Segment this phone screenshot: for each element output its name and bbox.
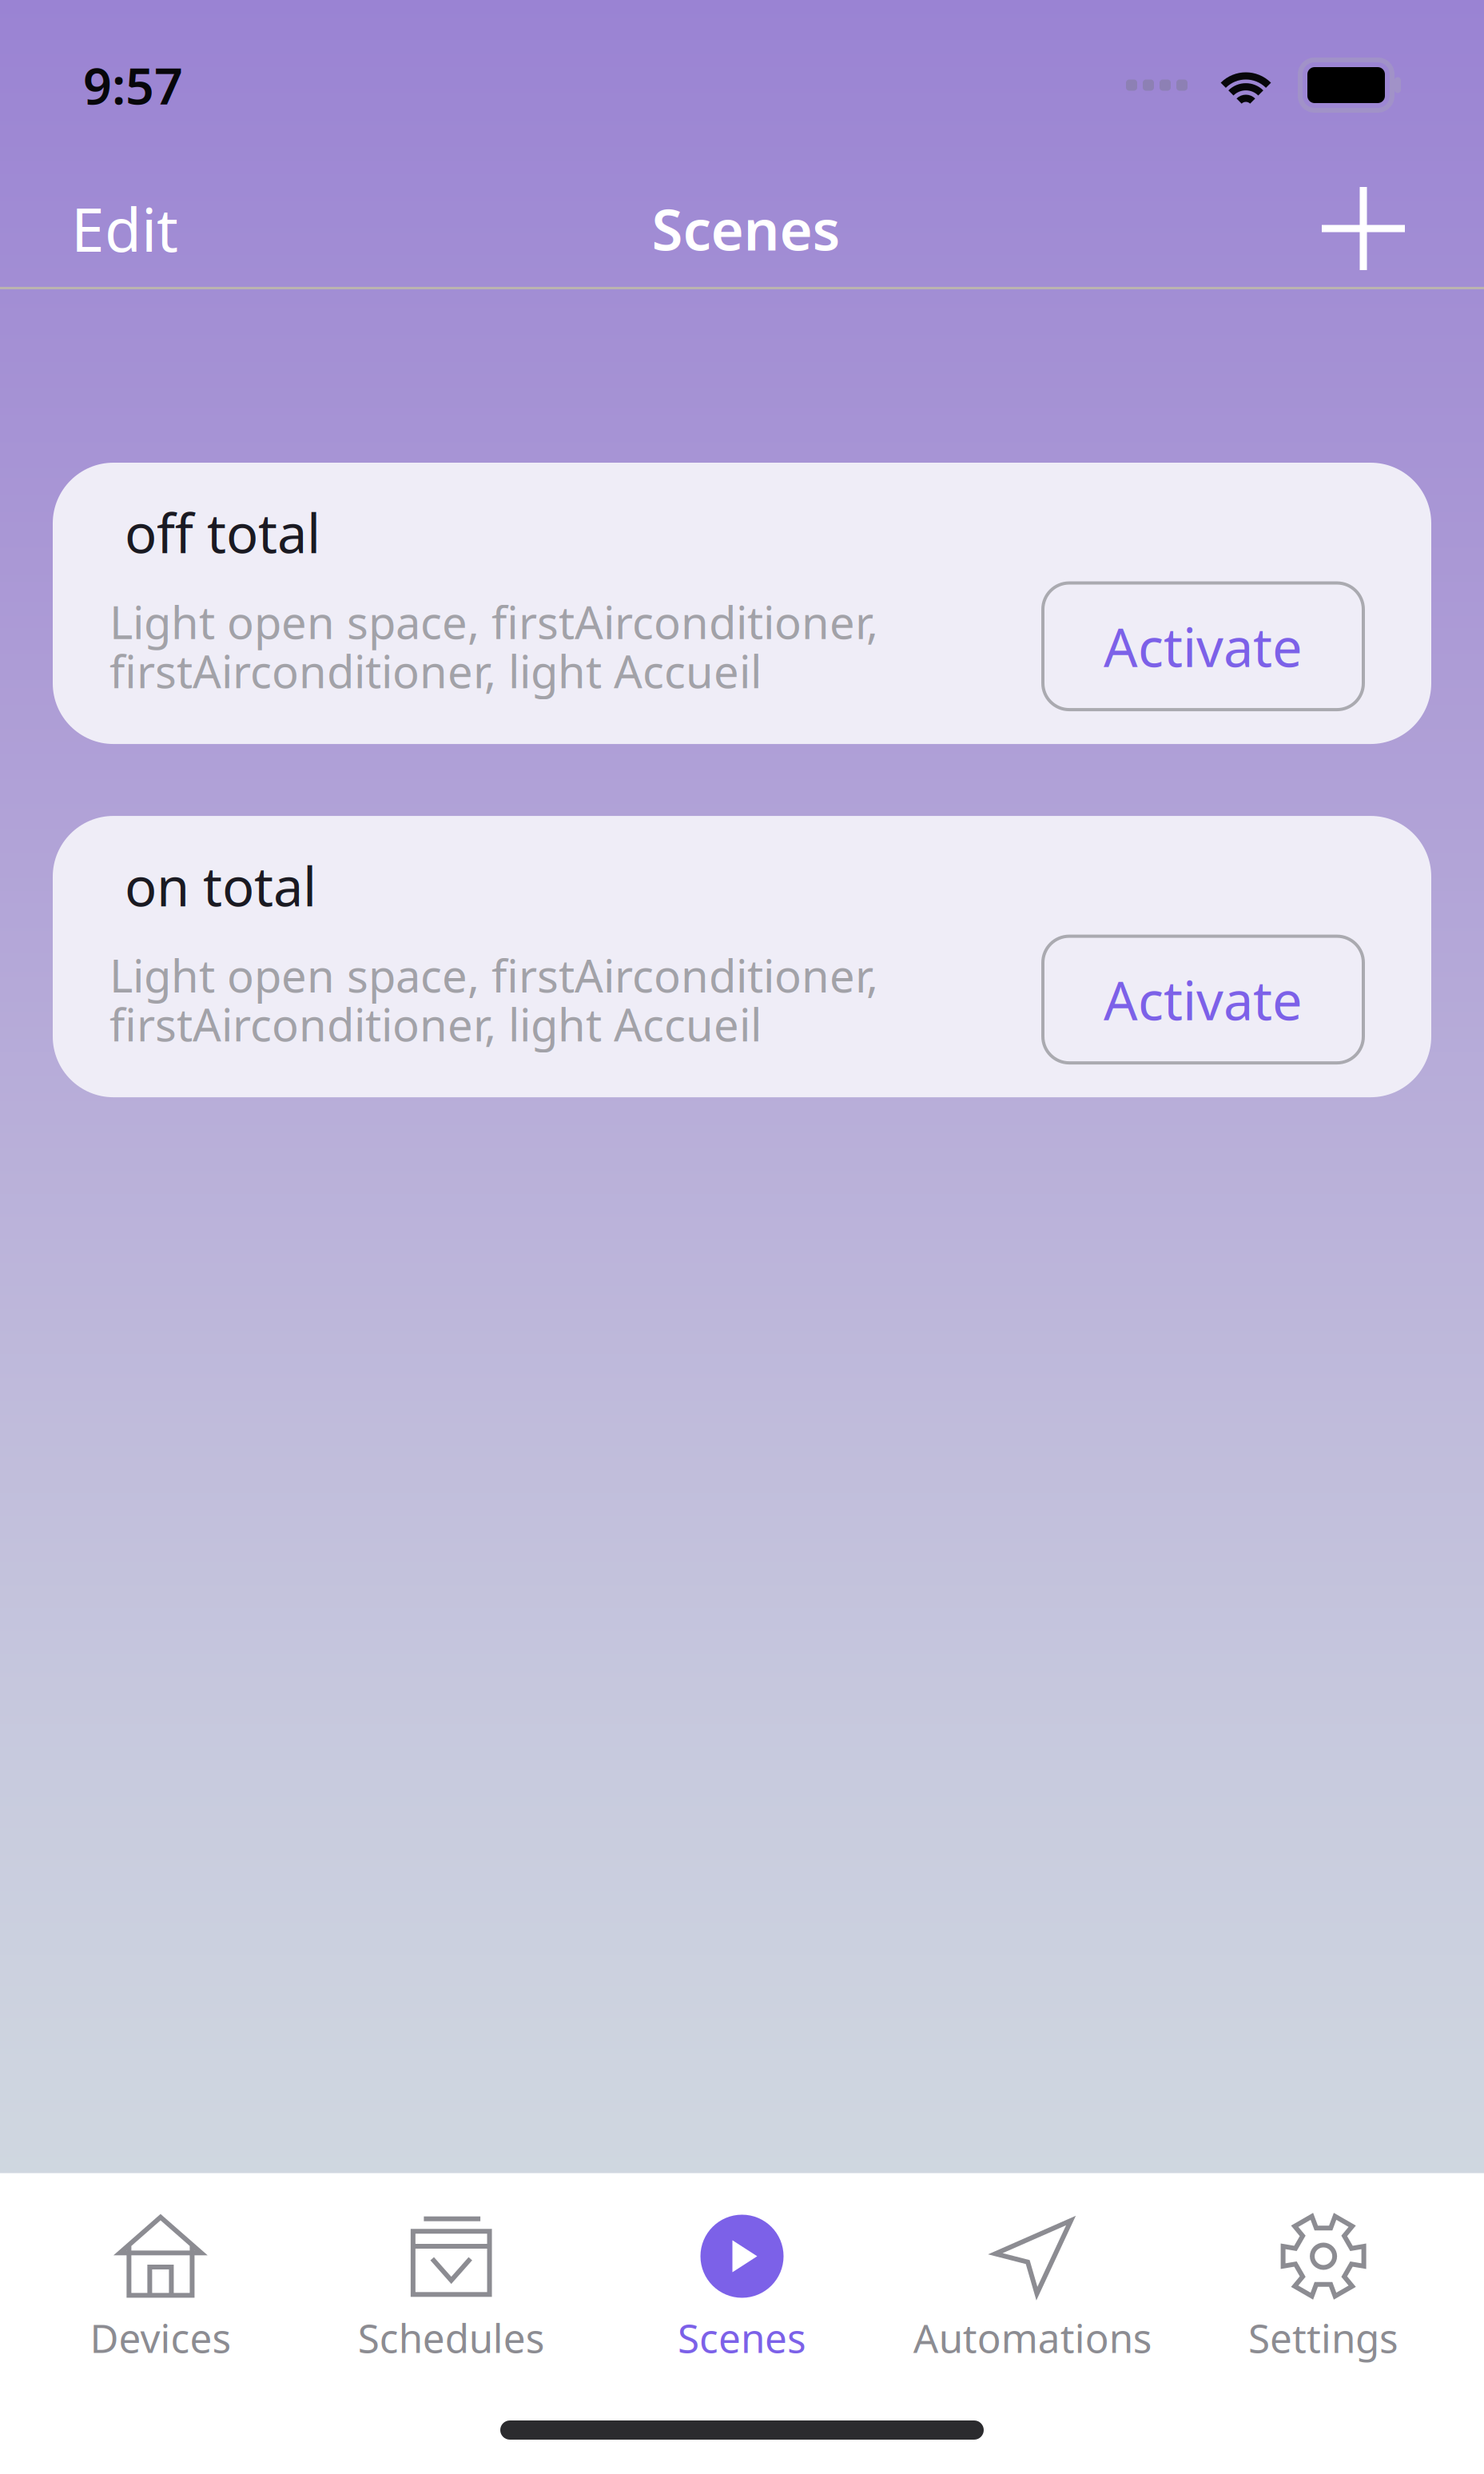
button[interactable]: Edit: [64, 167, 185, 291]
staticText: Automations: [913, 2311, 1152, 2364]
staticText: Scenes: [678, 2311, 806, 2364]
staticText: Scenes: [652, 191, 840, 266]
button[interactable]: Schedules: [306, 2215, 597, 2364]
button[interactable]: Settings: [1178, 2215, 1469, 2364]
staticText: Activate: [1104, 964, 1303, 1035]
staticText: on total: [125, 850, 316, 921]
button[interactable]: Devices: [15, 2215, 306, 2364]
button[interactable]: Activate: [1043, 583, 1375, 710]
staticText: 9:57: [83, 52, 183, 118]
staticText: Light open space, firstAirconditioner, f…: [109, 945, 878, 1054]
staticText: Settings: [1248, 2311, 1399, 2364]
staticText: Edit: [71, 189, 178, 268]
staticText: Schedules: [358, 2311, 545, 2364]
staticText: Devices: [90, 2311, 231, 2364]
button[interactable]: Add Scene: [1307, 172, 1420, 285]
staticText: Activate: [1104, 611, 1303, 682]
staticText: Light open space, firstAirconditioner, f…: [109, 592, 878, 700]
button[interactable]: Scenes: [597, 2215, 887, 2364]
button[interactable]: Automations: [887, 2215, 1178, 2364]
staticText: off total: [125, 497, 320, 568]
button[interactable]: Activate: [1043, 936, 1375, 1063]
